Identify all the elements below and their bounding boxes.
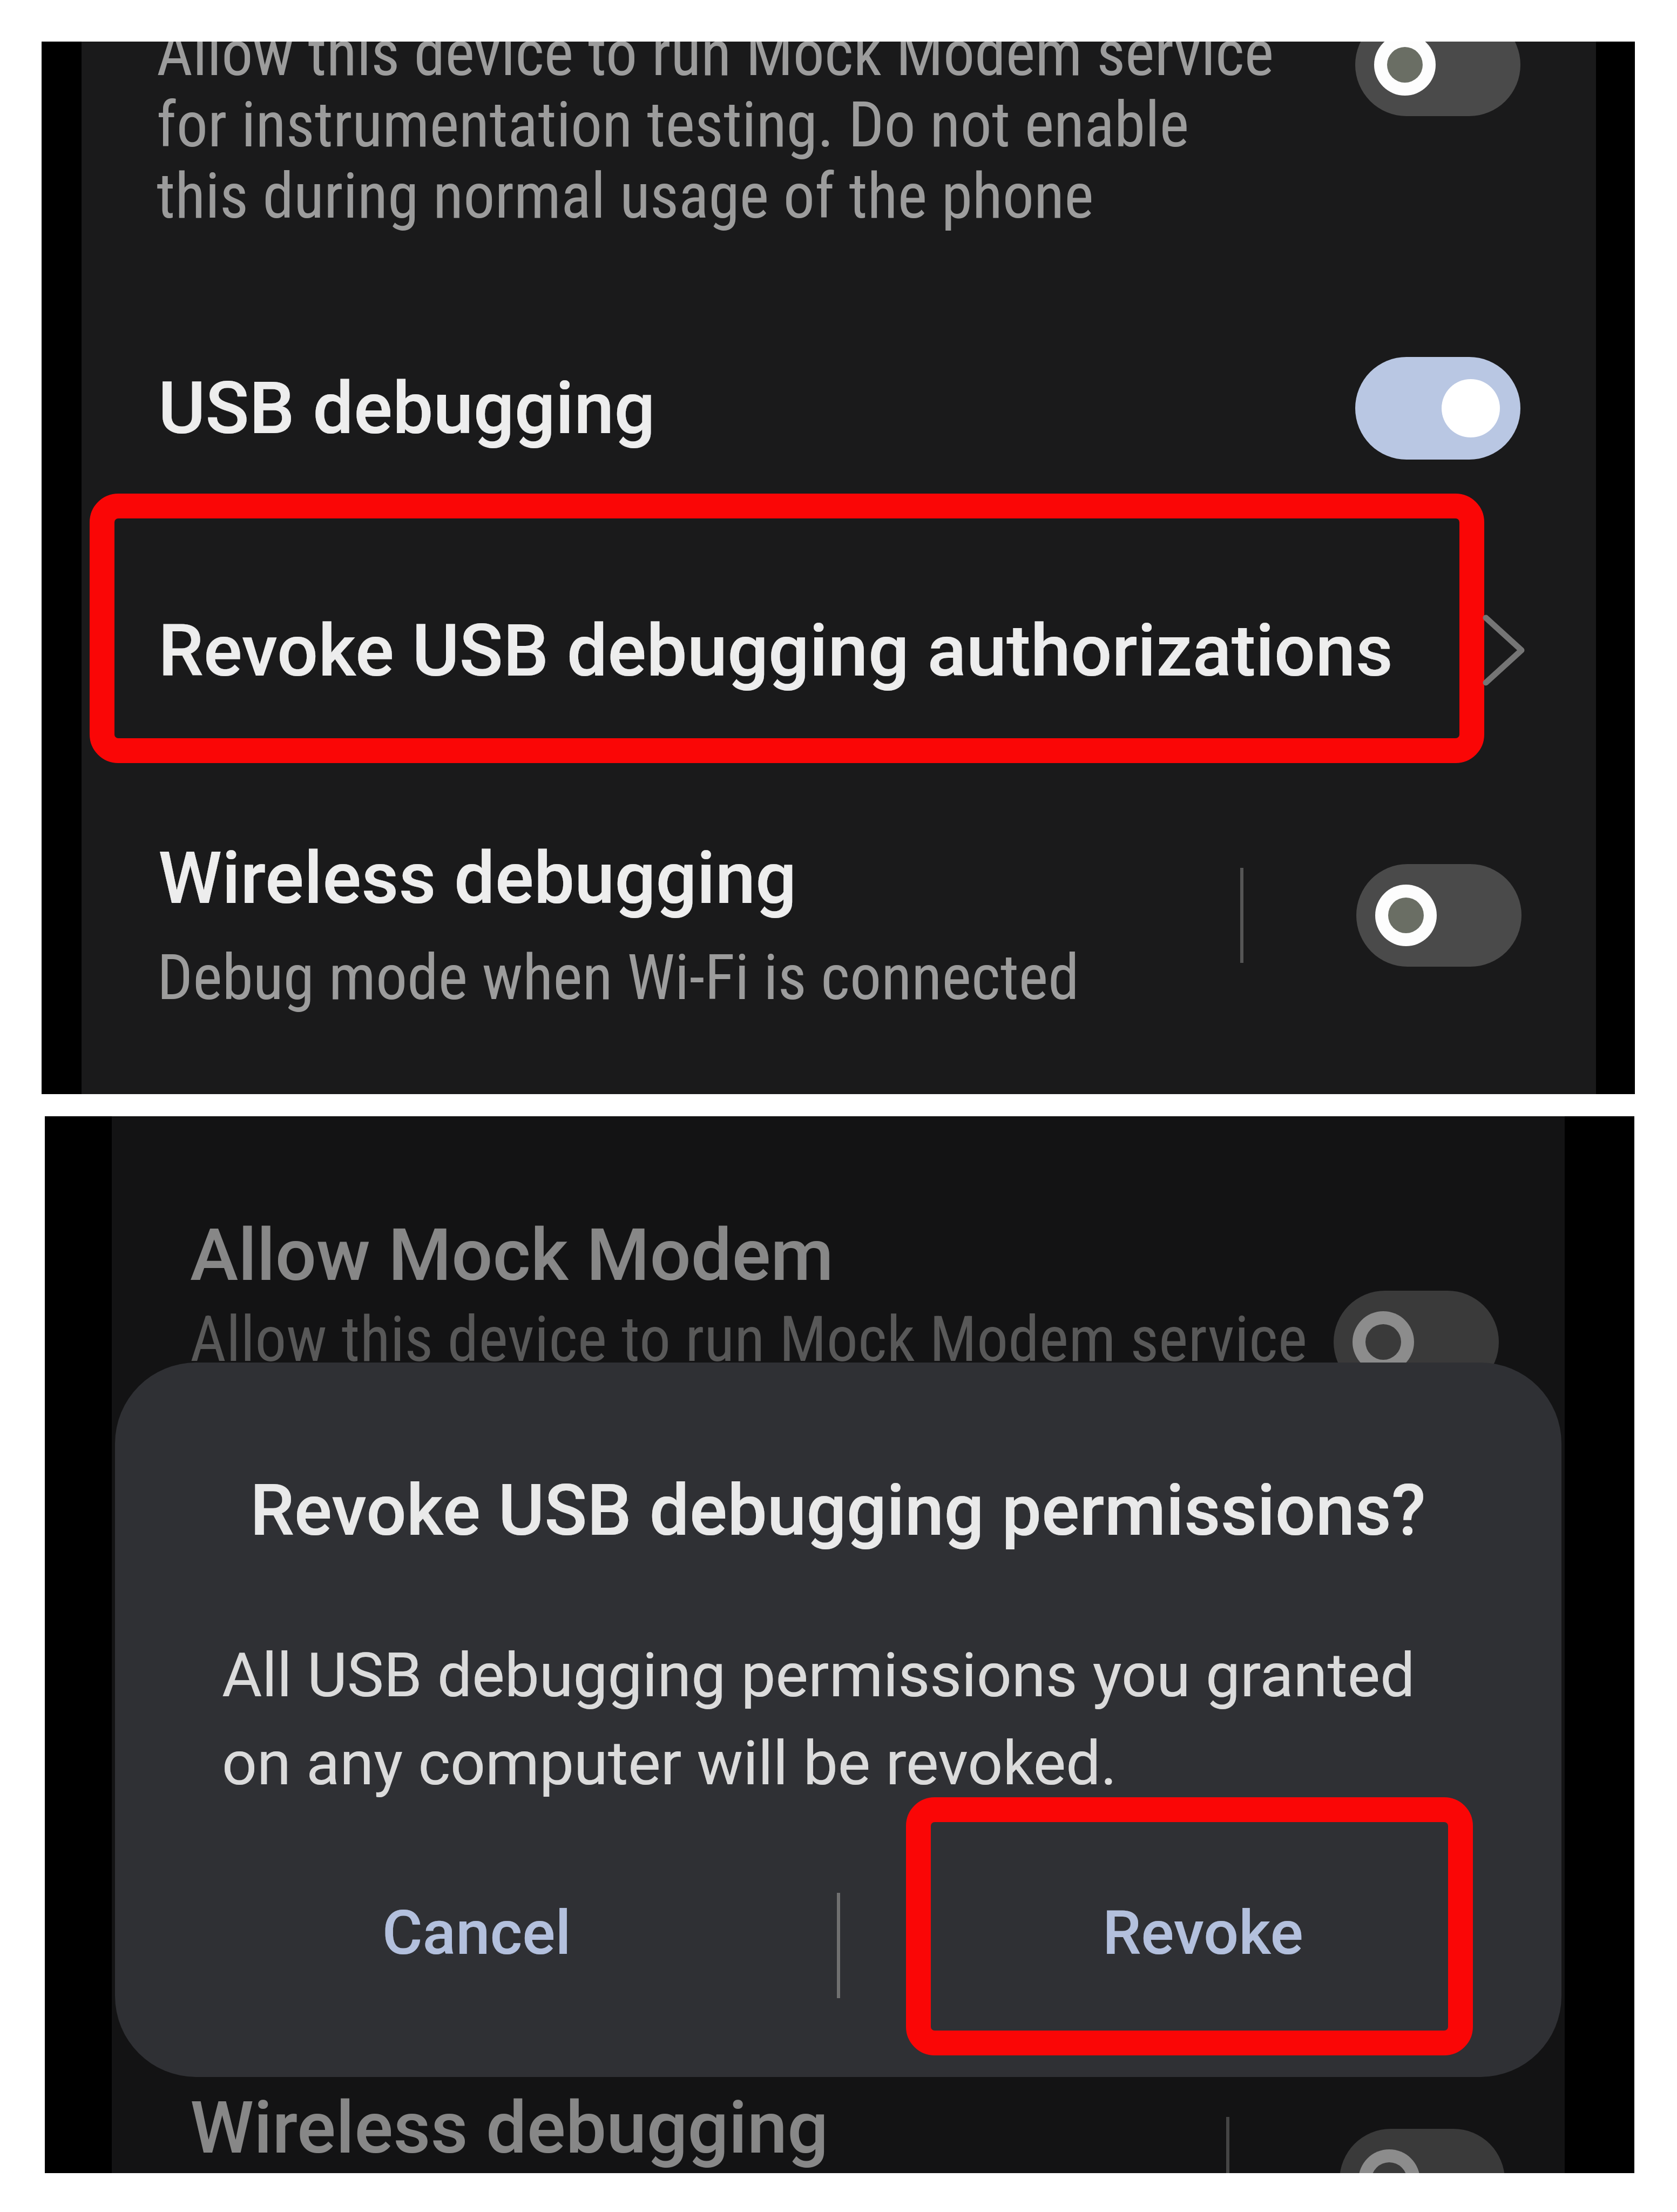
button[interactable]: [82, 821, 1596, 1026]
button[interactable]: [222, 1863, 735, 1998]
button[interactable]: [90, 494, 1484, 763]
button[interactable]: [918, 1863, 1458, 1998]
button[interactable]: [82, 335, 1596, 481]
